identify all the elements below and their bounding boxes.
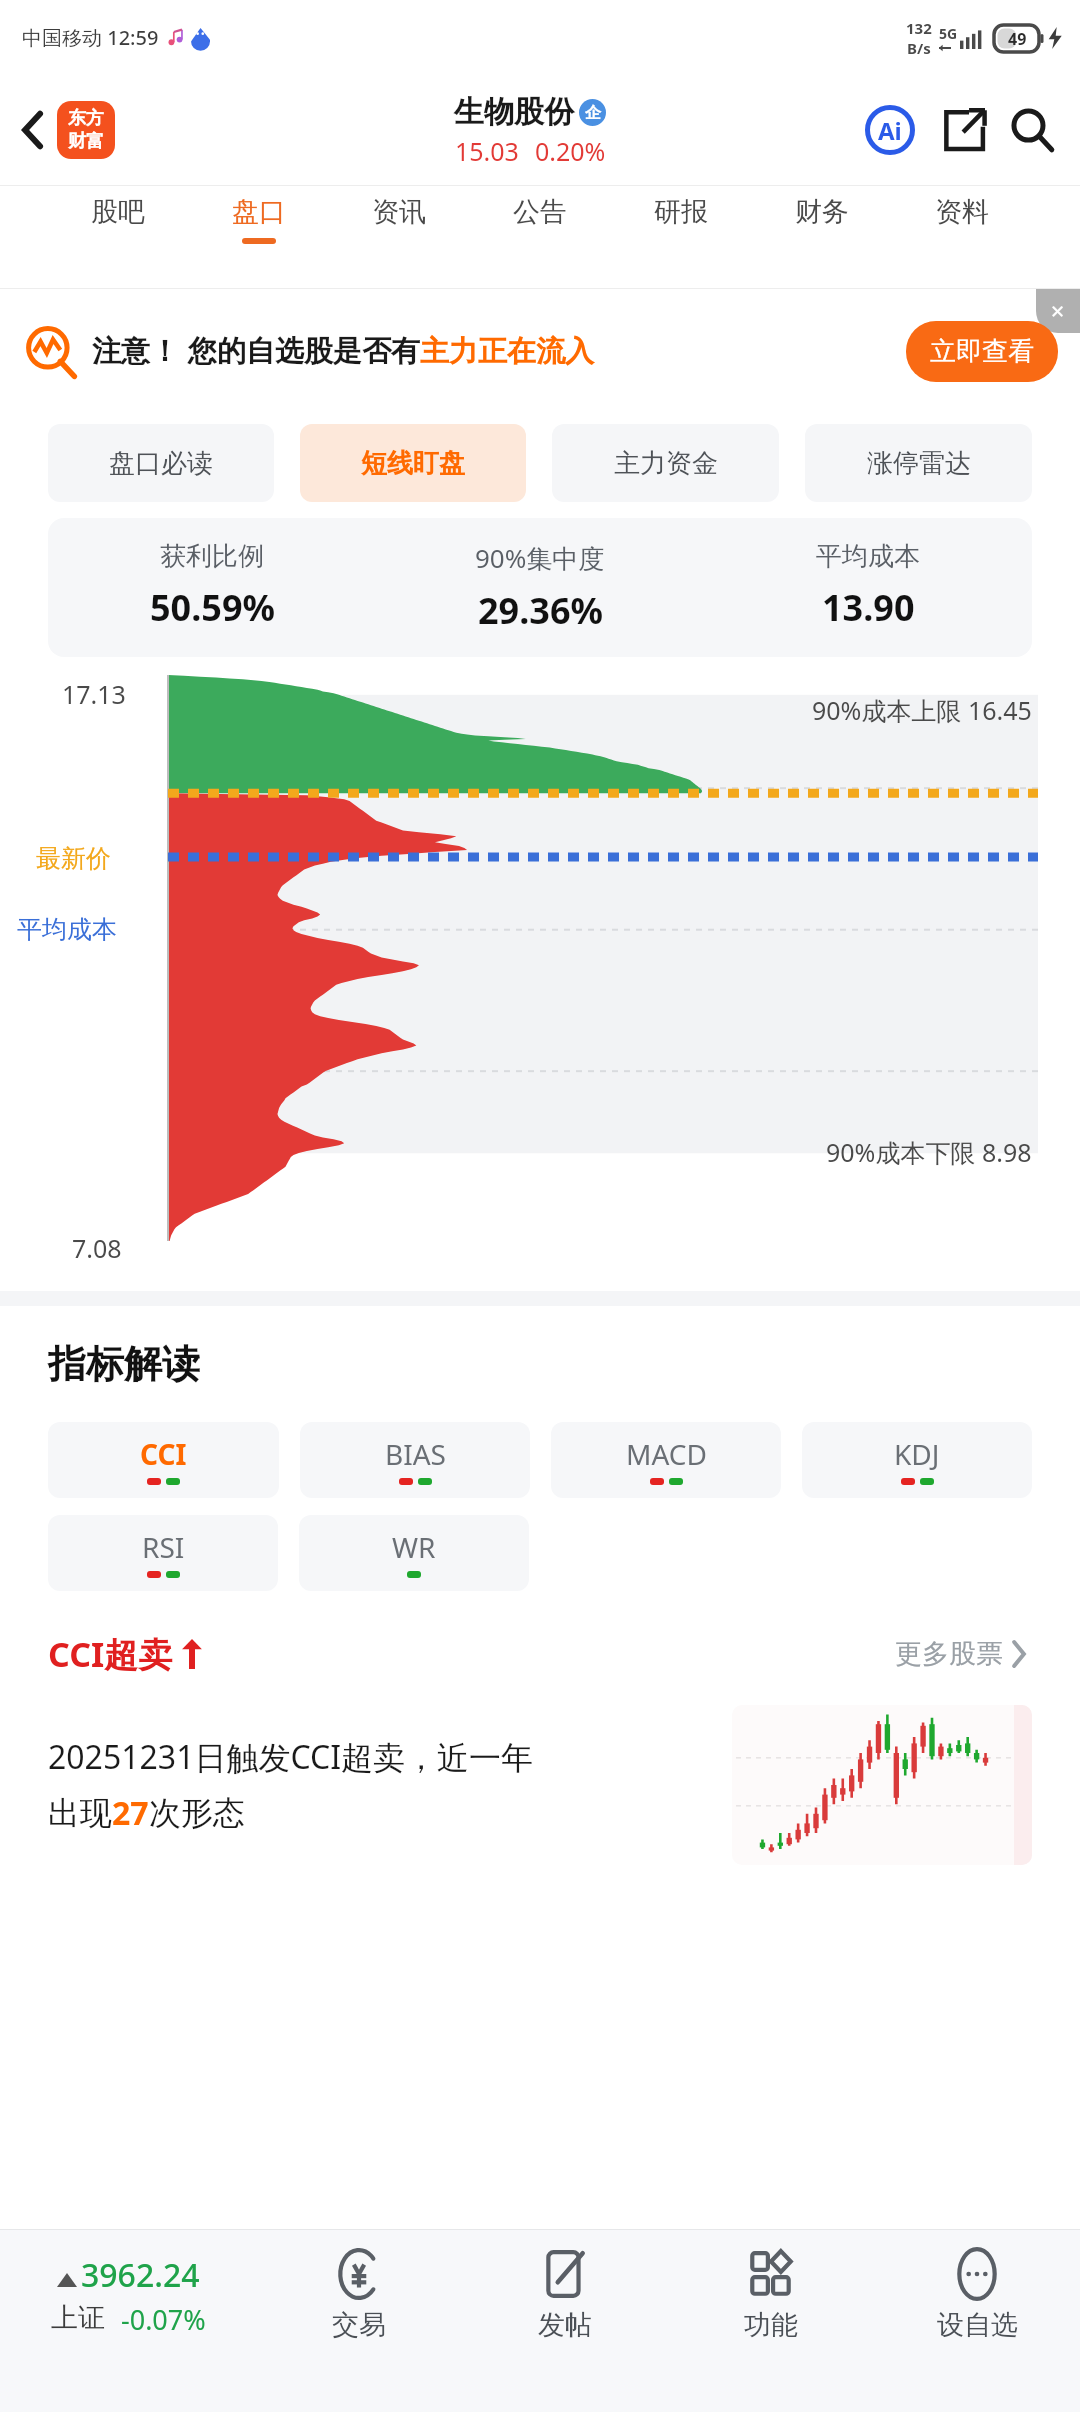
staticText: 7.08 xyxy=(72,1231,122,1265)
staticText: 东方 xyxy=(68,107,104,130)
staticText: 资料 xyxy=(935,195,989,229)
staticText: 功能 xyxy=(744,2308,798,2342)
button[interactable]: 公告 xyxy=(507,185,573,254)
button[interactable]: 盘口 xyxy=(226,185,292,254)
staticText: 27 xyxy=(112,1791,149,1835)
staticText: KDJ xyxy=(894,1435,940,1473)
button[interactable]: 3962.24 xyxy=(0,2253,256,2338)
staticText: 盘口必读 xyxy=(109,447,213,480)
staticText: 17.13 xyxy=(62,677,126,711)
staticText: 90%集中度 xyxy=(475,540,605,576)
staticText: 13.90 xyxy=(822,583,915,632)
staticText: 上证 xyxy=(51,2301,105,2335)
button[interactable]: 获利比例 xyxy=(48,518,1032,657)
staticText: 财富 xyxy=(68,130,104,153)
staticText: 获利比例 xyxy=(160,540,264,573)
staticText: -0.07% xyxy=(121,2301,206,2338)
button[interactable]: WR xyxy=(299,1515,529,1591)
button[interactable]: Share xyxy=(938,104,990,156)
staticText: WR xyxy=(392,1528,436,1566)
staticText: 短线盯盘 xyxy=(361,447,465,480)
button[interactable]: AI xyxy=(862,102,918,158)
staticText: BIAS xyxy=(385,1435,446,1473)
staticText: 股吧 xyxy=(91,195,145,229)
staticText: 3962.24 xyxy=(81,2253,200,2297)
staticText: 更多股票 xyxy=(895,1637,1003,1671)
button[interactable]: MACD xyxy=(551,1422,781,1498)
staticText: CCI超卖 xyxy=(48,1631,173,1677)
button[interactable]: 财务 xyxy=(789,185,855,254)
staticText: 注意！ xyxy=(92,333,179,370)
staticText: 5G xyxy=(939,24,958,43)
staticText: 50.59% xyxy=(150,583,275,632)
staticText: 交易 xyxy=(332,2308,386,2342)
staticText: 公告 xyxy=(513,195,567,229)
button[interactable]: 立即查看 xyxy=(906,321,1058,382)
staticText: 设自选 xyxy=(937,2308,1018,2342)
button[interactable]: 发帖 xyxy=(462,2242,668,2348)
staticText: 0.20% xyxy=(535,134,606,168)
button[interactable]: 功能 xyxy=(668,2242,874,2348)
button[interactable]: 更多股票 xyxy=(889,1631,1032,1677)
button[interactable]: KDJ xyxy=(802,1422,1032,1498)
button[interactable]: BIAS xyxy=(300,1422,530,1498)
staticText: 财务 xyxy=(795,195,849,229)
staticText: 90%成本上限 16.45 xyxy=(812,693,1032,727)
staticText: 企 xyxy=(585,103,601,123)
staticText: 最新价 xyxy=(36,843,111,874)
button[interactable]: 设自选 xyxy=(874,2242,1080,2348)
staticText: 生物股份 xyxy=(454,93,574,131)
button[interactable]: 涨停雷达 xyxy=(805,424,1032,502)
staticText: 中国移动 12:59 xyxy=(22,24,159,51)
staticText: 90%成本下限 8.98 xyxy=(826,1135,1032,1169)
staticText: 研报 xyxy=(654,195,708,229)
staticText: B/s xyxy=(907,38,931,58)
button[interactable]: Close ad xyxy=(1036,289,1080,333)
button[interactable]: 交易 xyxy=(256,2242,462,2348)
button[interactable]: CCI xyxy=(48,1422,279,1498)
button[interactable]: Back xyxy=(14,104,52,156)
button[interactable]: 主力资金 xyxy=(552,424,779,502)
staticText: Ai xyxy=(878,114,902,147)
button[interactable] xyxy=(732,1705,1032,1865)
staticText: 49 xyxy=(1008,28,1027,50)
button[interactable]: 东方 xyxy=(57,101,115,159)
button[interactable]: CCI超卖 xyxy=(48,1631,203,1677)
button[interactable]: 资讯 xyxy=(366,185,432,254)
button[interactable]: RSI xyxy=(48,1515,278,1591)
staticText: 主力正在流入 xyxy=(420,333,594,370)
staticText: 15.03 xyxy=(455,134,519,168)
button[interactable]: 短线盯盘 xyxy=(300,424,526,502)
staticText: CCI xyxy=(140,1435,187,1473)
staticText: 指标解读 xyxy=(48,1340,200,1388)
staticText: 发帖 xyxy=(538,2308,592,2342)
button[interactable]: 资料 xyxy=(929,185,995,254)
staticText: 20251231日触发CCI超卖，近一年 xyxy=(48,1735,534,1779)
staticText: MACD xyxy=(626,1435,707,1473)
button[interactable]: 股吧 xyxy=(85,185,151,254)
staticText: 次形态 xyxy=(149,1793,245,1833)
button[interactable]: Search xyxy=(1006,104,1058,156)
staticText: 盘口 xyxy=(232,195,286,229)
staticText: RSI xyxy=(142,1528,185,1566)
staticText: 资讯 xyxy=(372,195,426,229)
staticText: 132 xyxy=(906,18,932,38)
staticText: 立即查看 xyxy=(930,335,1034,368)
button[interactable]: 研报 xyxy=(648,185,714,254)
button[interactable]: 盘口必读 xyxy=(48,424,274,502)
staticText: 29.36% xyxy=(478,586,603,635)
staticText: 您的自选股是否有 xyxy=(188,333,420,370)
staticText: 涨停雷达 xyxy=(867,447,971,480)
staticText: ✕ xyxy=(1050,301,1066,322)
staticText: 出现 xyxy=(48,1793,112,1833)
staticText: 平均成本 xyxy=(17,914,117,945)
staticText: 平均成本 xyxy=(816,540,920,573)
staticText: 主力资金 xyxy=(614,447,718,480)
